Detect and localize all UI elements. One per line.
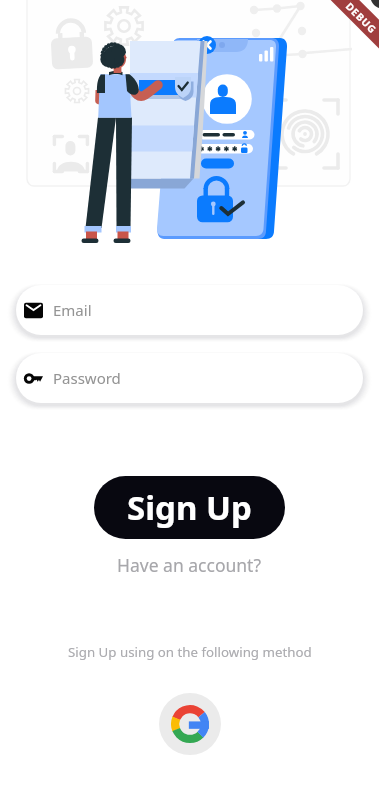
button[interactable]: Sign Up bbox=[94, 476, 285, 539]
button[interactable]: Email bbox=[16, 285, 363, 335]
staticText: Sign Up bbox=[127, 485, 252, 530]
button[interactable]: Sign up with Google bbox=[159, 693, 221, 755]
button[interactable]: Password bbox=[16, 353, 363, 403]
staticText: Email bbox=[53, 300, 92, 320]
staticText: DEBUG bbox=[343, 0, 379, 37]
staticText: Have an account? bbox=[117, 553, 262, 577]
staticText: Sign Up using on the following method bbox=[68, 643, 312, 661]
staticText: Password bbox=[53, 368, 121, 388]
button[interactable]: Have an account? bbox=[113, 549, 266, 581]
